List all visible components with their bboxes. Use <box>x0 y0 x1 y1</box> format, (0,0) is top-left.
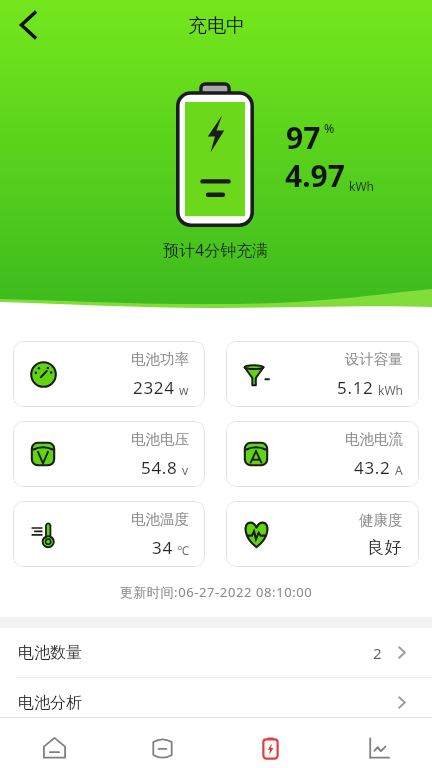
button[interactable]: 返回 <box>7 5 47 45</box>
staticText: 电池电流 <box>345 430 403 448</box>
button[interactable]: 电池 <box>108 727 216 768</box>
staticText: 4.97 <box>285 155 345 196</box>
button[interactable]: 统计 <box>324 727 432 768</box>
button[interactable]: 充电 <box>216 727 324 768</box>
button[interactable]: 电池电流 <box>226 421 419 487</box>
staticText: 电池温度 <box>131 510 189 528</box>
staticText: 2 <box>373 643 382 663</box>
button[interactable]: 首页 <box>0 727 108 768</box>
button[interactable]: 电池温度 <box>13 501 205 567</box>
staticText: 34 <box>152 536 173 559</box>
staticText: 电池电压 <box>131 430 189 448</box>
button[interactable]: 电池数量 <box>0 628 432 677</box>
staticText: 更新时间:06-27-2022 08:10:00 <box>0 583 432 601</box>
staticText: v <box>182 462 189 478</box>
staticText: kWh <box>349 178 374 194</box>
staticText: 预计4分钟充满 <box>163 239 269 261</box>
staticText: 43.2 <box>354 456 391 479</box>
staticText: 97 <box>286 117 321 158</box>
button[interactable]: 电池功率 <box>13 341 205 407</box>
staticText: 健康度 <box>359 511 403 529</box>
button[interactable]: 电池分析 <box>0 678 432 727</box>
staticText: ℃ <box>177 542 189 558</box>
button[interactable]: 设计容量 <box>226 341 419 407</box>
staticText: % <box>324 120 335 136</box>
staticText: kWh <box>378 382 403 398</box>
staticText: w <box>179 382 189 398</box>
staticText: 5.12 <box>337 376 374 399</box>
staticText: 电池功率 <box>131 350 189 368</box>
button[interactable]: 健康度 <box>226 501 419 567</box>
button[interactable]: 电池电压 <box>13 421 205 487</box>
staticText: 电池分析 <box>18 693 82 713</box>
staticText: 良好 <box>367 537 403 558</box>
staticText: A <box>395 462 403 478</box>
staticText: 设计容量 <box>345 350 403 368</box>
staticText: 2324 <box>133 376 175 399</box>
staticText: 54.8 <box>141 456 178 479</box>
staticText: 充电中 <box>188 14 245 38</box>
staticText: 电池数量 <box>18 643 82 663</box>
